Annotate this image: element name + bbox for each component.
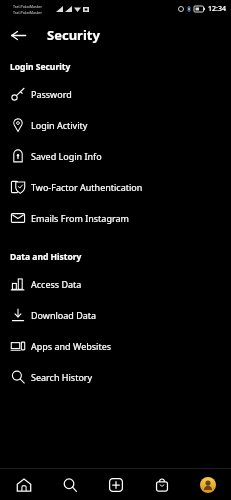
button[interactable]: Download Data: [0, 299, 231, 330]
button[interactable]: Shop: [139, 469, 185, 500]
staticText: Saved Login Info: [31, 150, 102, 162]
staticText: Download Data: [31, 309, 97, 321]
staticText: Apps and Websites: [31, 340, 112, 352]
staticText: Tsel-PakaiMasker: [13, 10, 43, 15]
button[interactable]: Access Data: [0, 268, 231, 299]
button[interactable]: Back: [5, 22, 31, 48]
staticText: Login Activity: [31, 119, 88, 131]
staticText: Security: [47, 26, 100, 44]
staticText: Login Security: [10, 61, 71, 73]
button[interactable]: Password: [0, 78, 231, 109]
staticText: 12:34: [208, 4, 226, 14]
button[interactable]: Saved Login Info: [0, 140, 231, 171]
staticText: Data and History: [10, 251, 82, 263]
staticText: Search History: [31, 371, 93, 383]
button[interactable]: Search: [47, 469, 93, 500]
staticText: Password: [31, 88, 72, 100]
button[interactable]: Login Activity: [0, 109, 231, 140]
button[interactable]: Profile: [185, 469, 231, 500]
staticText: Access Data: [31, 278, 82, 290]
staticText: Two-Factor Authentication: [31, 181, 143, 193]
button[interactable]: Search History: [0, 361, 231, 392]
button[interactable]: Emails From Instagram: [0, 202, 231, 233]
staticText: Tsel-PakaiMasker: [13, 4, 43, 9]
button[interactable]: Home: [0, 469, 47, 500]
button[interactable]: Create: [93, 469, 139, 500]
button[interactable]: Two-Factor Authentication: [0, 171, 231, 202]
button[interactable]: Apps and Websites: [0, 330, 231, 361]
staticText: Emails From Instagram: [31, 212, 129, 224]
